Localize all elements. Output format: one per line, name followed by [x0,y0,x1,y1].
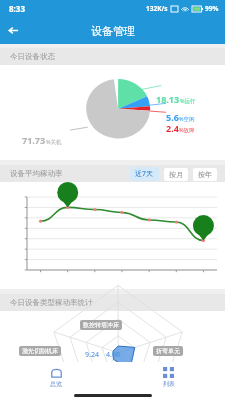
button[interactable]: 按年 [193,168,217,181]
button[interactable]: 列表 [112,362,225,390]
staticText: 18.13 [156,93,180,105]
staticText: 数控转塔冲床 [83,321,119,329]
staticText: 2.4 [166,122,179,134]
staticText: 5.6 [166,111,179,123]
button[interactable]: Back [0,17,27,44]
staticText: 8:33 [9,3,25,14]
staticText: 今日设备类型稼动率统计 [10,298,93,307]
staticText: 4.06 [106,350,120,360]
staticText: %故障 [179,126,195,134]
staticText: 列表 [163,380,175,388]
button[interactable]: 总览 [0,362,112,390]
staticText: 折弯单元 [156,347,180,355]
staticText: %关机 [46,138,62,146]
staticText: 激光切割机床 [22,347,58,355]
staticText: 总览 [50,380,62,388]
staticText: %运行 [180,97,196,105]
staticText: 99% [205,4,219,13]
button[interactable]: 按月 [164,168,188,181]
staticText: 132K/s [146,4,168,13]
staticText: 71.73 [22,134,46,146]
staticText: 9.24 [85,350,99,360]
staticText: 按月 [169,170,183,179]
staticText: 设备管理 [91,24,135,38]
staticText: 今日设备状态 [10,52,55,61]
staticText: 设备平均稼动率 [10,169,63,178]
staticText: %空闲 [179,115,195,123]
button[interactable]: 近7天 [130,167,159,181]
staticText: 近7天 [135,169,154,179]
staticText: 按年 [198,170,212,179]
